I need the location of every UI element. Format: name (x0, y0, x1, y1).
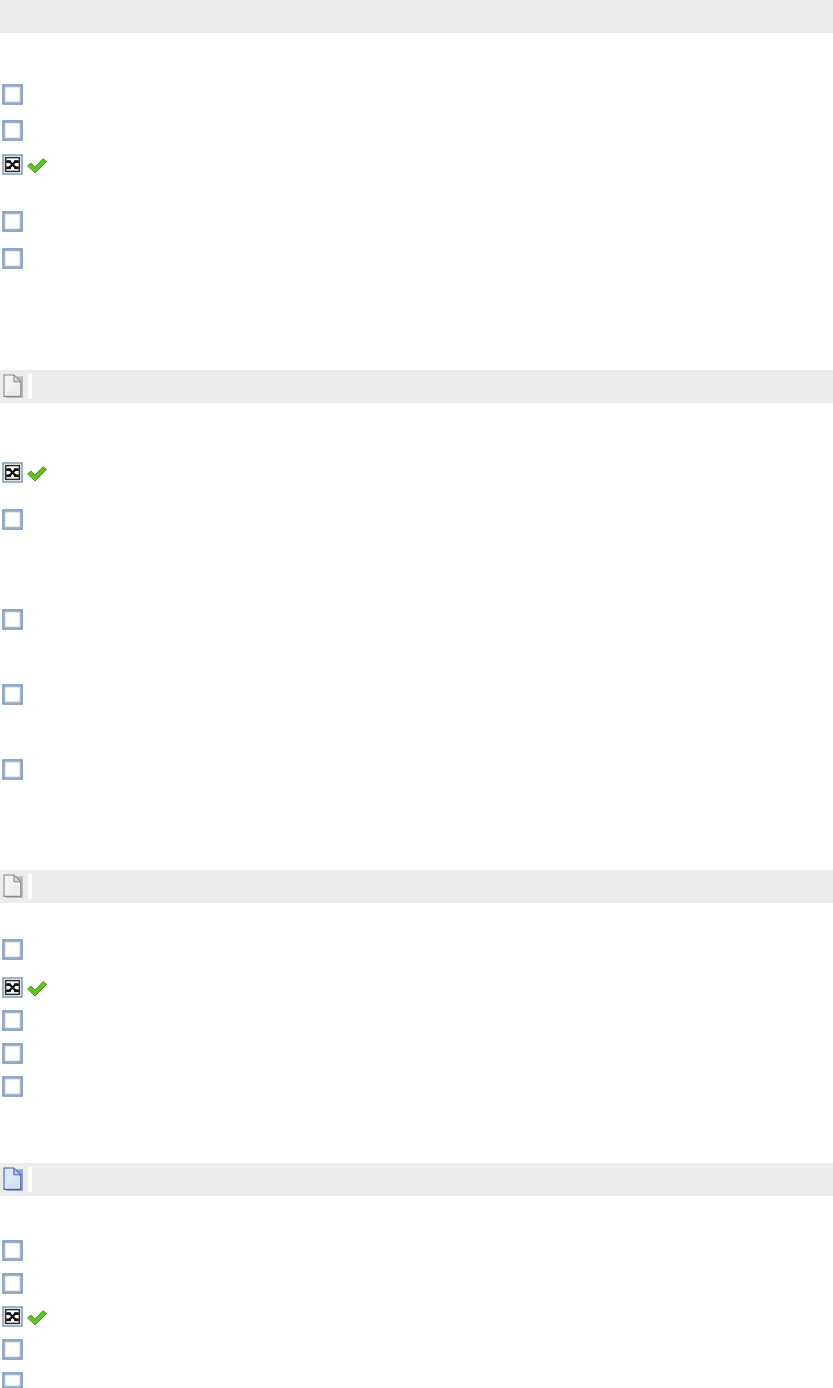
button[interactable]: Option 1 (3, 1241, 22, 1260)
button[interactable]: Option 1 (3, 85, 22, 104)
button[interactable]: Option 5 (3, 1373, 22, 1388)
button[interactable]: Option 1 (3, 510, 22, 529)
button[interactable]: Document (0, 370, 833, 403)
other: Correct (27, 157, 47, 174)
button[interactable]: Document (4, 875, 23, 898)
button[interactable]: Image could not be loaded (3, 978, 22, 997)
button[interactable]: Option 3 (3, 685, 22, 704)
button[interactable]: Image could not be loaded (3, 1307, 22, 1326)
button[interactable]: Image could not be loaded (3, 155, 22, 174)
other: Correct (27, 465, 47, 482)
button[interactable]: Option 4 (3, 1044, 22, 1063)
button[interactable]: Option 5 (3, 249, 22, 268)
other: Correct (27, 1309, 47, 1326)
button[interactable]: Option 4 (3, 212, 22, 231)
button[interactable]: Document (0, 870, 833, 903)
button[interactable]: Option 2 (3, 121, 22, 140)
button[interactable]: Option 3 (3, 1011, 22, 1030)
button[interactable]: Option 4 (3, 1340, 22, 1359)
other: Correct (27, 980, 47, 997)
button[interactable]: Document (4, 1168, 23, 1191)
button[interactable]: Option 2 (3, 1274, 22, 1293)
button[interactable]: Document (4, 375, 23, 398)
button[interactable]: Document (0, 1163, 833, 1196)
button[interactable]: Option 2 (3, 610, 22, 629)
button[interactable]: Option 4 (3, 760, 22, 779)
button[interactable]: Option 5 (3, 1077, 22, 1096)
button[interactable]: Image could not be loaded (3, 463, 22, 482)
button[interactable]: Option 1 (3, 940, 22, 959)
